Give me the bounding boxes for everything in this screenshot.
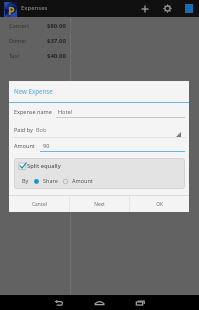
button[interactable]: Back xyxy=(45,295,70,310)
staticText: Hotel xyxy=(58,108,72,115)
staticText: Concert xyxy=(9,22,30,29)
button[interactable]: OK xyxy=(130,196,189,212)
staticText: Share xyxy=(43,177,58,184)
staticText: By xyxy=(22,177,29,184)
button[interactable]: Cancel xyxy=(9,196,69,212)
button[interactable]: Taxi xyxy=(0,49,70,64)
staticText: Cancel xyxy=(32,201,47,208)
staticText: Dinner xyxy=(9,37,27,44)
button[interactable]: Split equally xyxy=(18,161,27,170)
staticText: Paid by xyxy=(14,126,33,133)
button[interactable]: Next xyxy=(70,196,129,212)
staticText: Bob xyxy=(36,126,47,133)
staticText: $80.00 xyxy=(47,22,66,30)
staticText: OK xyxy=(156,201,163,208)
staticText: $37.00 xyxy=(47,37,66,45)
staticText: 90 xyxy=(43,142,50,149)
button[interactable]: Add expense xyxy=(135,0,155,17)
button[interactable]: Home xyxy=(87,295,112,310)
staticText: P xyxy=(8,3,15,18)
button[interactable]: Settings xyxy=(157,0,178,17)
staticText: Split equally xyxy=(27,162,61,170)
staticText: Expense name xyxy=(14,108,52,115)
button[interactable]: Concert xyxy=(0,19,70,34)
staticText: $40.00 xyxy=(47,52,66,60)
staticText: New Expense xyxy=(14,87,53,95)
staticText: Expenses xyxy=(21,4,48,12)
staticText: Taxi xyxy=(9,52,20,59)
staticText: Amount xyxy=(72,177,93,184)
button[interactable]: Overflow menu xyxy=(178,0,199,17)
button[interactable]: Recent apps xyxy=(128,295,153,310)
staticText: Amount xyxy=(14,142,35,149)
staticText: Next xyxy=(94,201,105,208)
button[interactable]: Dinner xyxy=(0,34,70,49)
